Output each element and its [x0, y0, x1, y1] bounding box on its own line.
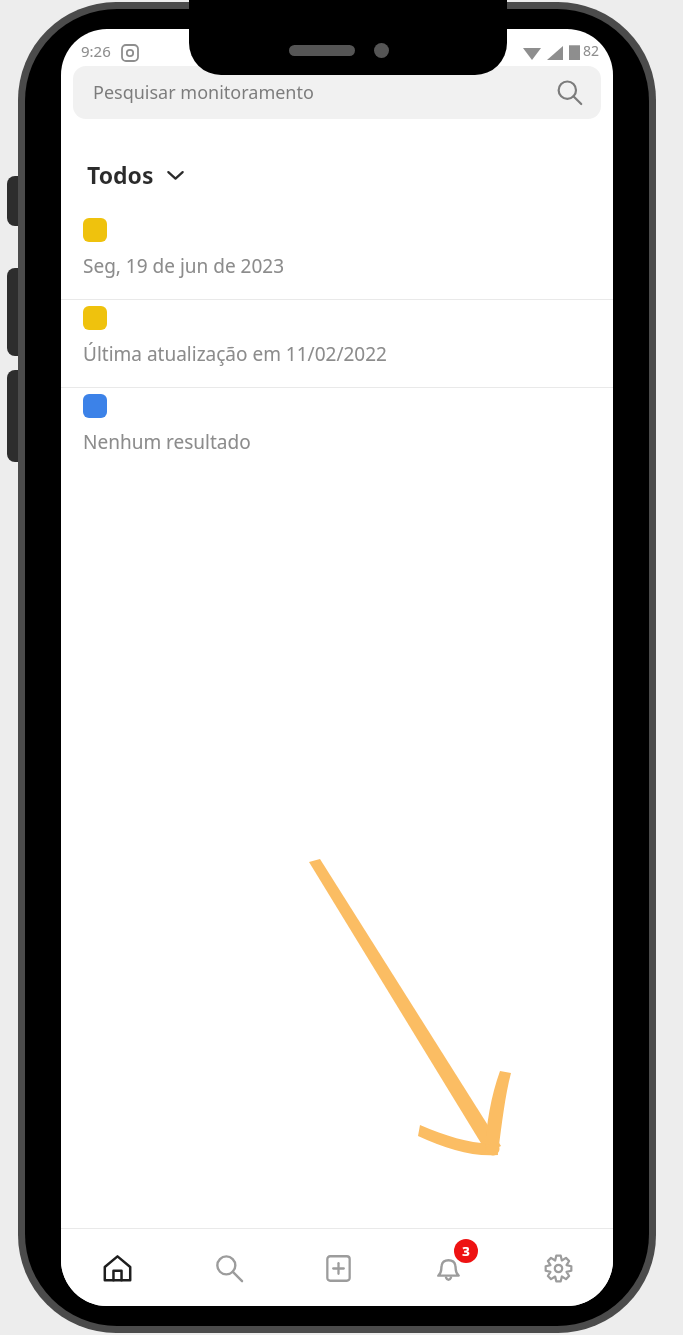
button[interactable]: Seg, 19 de jun de 2023 — [61, 212, 613, 299]
staticText: Última atualização em 11/02/2022 — [83, 341, 387, 367]
staticText: 3 — [462, 1242, 470, 1260]
button[interactable]: Settings — [503, 1229, 613, 1306]
staticText: 82 — [583, 41, 600, 60]
button[interactable]: Pesquisar monitoramento — [73, 66, 601, 119]
staticText: Seg, 19 de jun de 2023 — [83, 253, 285, 279]
staticText: Todos — [87, 159, 154, 190]
staticText: Nenhum resultado — [83, 429, 251, 455]
button[interactable]: Nenhum resultado — [61, 388, 613, 475]
button[interactable]: Todos — [83, 155, 188, 194]
button[interactable]: Home — [61, 1229, 172, 1306]
staticText: Pesquisar monitoramento — [93, 80, 314, 105]
button[interactable]: Notifications — [393, 1229, 503, 1306]
staticText: 9:26 — [81, 41, 111, 61]
button[interactable]: Search — [172, 1229, 283, 1306]
button[interactable]: Última atualização em 11/02/2022 — [61, 300, 613, 387]
button[interactable]: Add — [283, 1229, 393, 1306]
